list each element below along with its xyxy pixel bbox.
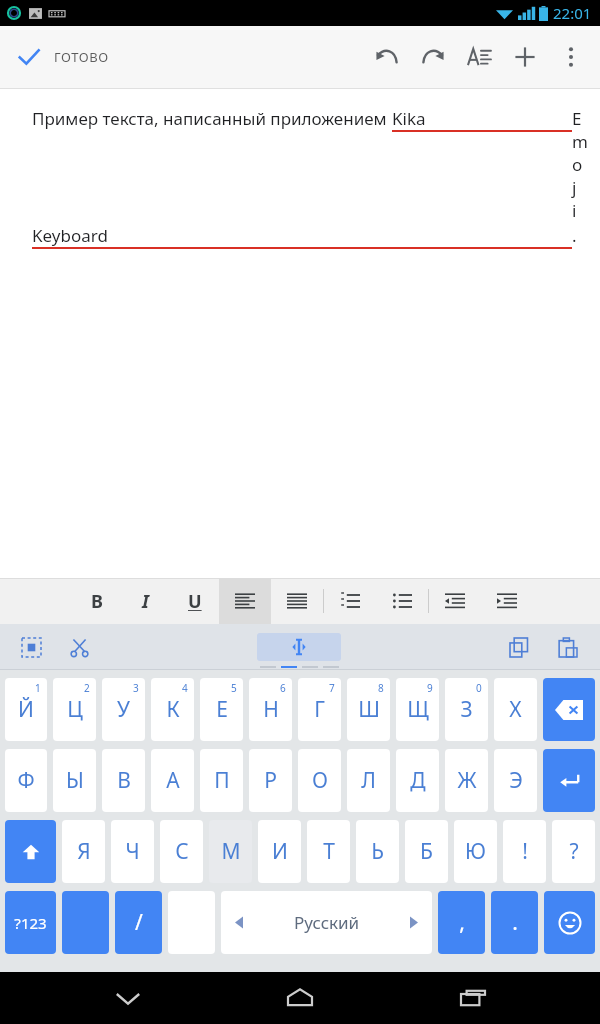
button[interactable]: Redo <box>410 34 456 80</box>
button[interactable]: З <box>445 678 488 741</box>
button[interactable]: Cut <box>62 630 96 664</box>
staticText: Ж <box>457 766 477 795</box>
staticText: Г <box>314 695 325 724</box>
staticText: Д <box>410 766 426 795</box>
button[interactable]: Bulleted list <box>376 578 428 624</box>
button[interactable]: Shift <box>5 820 56 883</box>
staticText: Русский <box>294 911 360 934</box>
button[interactable]: Undo <box>364 34 410 80</box>
staticText: Ь <box>371 837 384 866</box>
button[interactable]: Increase indent <box>481 578 533 624</box>
button[interactable]: Home <box>255 972 345 1024</box>
button[interactable]: А <box>151 749 194 812</box>
staticText: 8 <box>378 681 384 695</box>
staticText: . <box>512 908 518 937</box>
button[interactable]: Щ <box>396 678 439 741</box>
button[interactable]: Backspace <box>543 678 595 741</box>
button[interactable]: И <box>258 820 301 883</box>
button[interactable]: ! <box>503 820 546 883</box>
button[interactable]: Б <box>405 820 448 883</box>
staticText: К <box>166 695 180 724</box>
staticText: ! <box>522 837 528 866</box>
button[interactable]: Я <box>62 820 105 883</box>
button[interactable]: С <box>160 820 203 883</box>
button[interactable]: , <box>438 891 485 954</box>
button[interactable]: B <box>72 578 121 624</box>
staticText: Л <box>361 766 376 795</box>
button[interactable]: Emoji <box>544 891 595 954</box>
staticText: / <box>135 908 143 937</box>
button[interactable]: Р <box>249 749 292 812</box>
staticText: В <box>117 766 131 795</box>
button[interactable]: Х <box>494 678 537 741</box>
staticText: Э <box>509 766 523 795</box>
button[interactable]: Key <box>62 891 109 954</box>
staticText: А <box>166 766 180 795</box>
button[interactable]: . <box>491 891 538 954</box>
button[interactable]: Пример текста, написанный приложением <box>0 89 600 578</box>
button[interactable]: Н <box>249 678 292 741</box>
button[interactable]: У <box>102 678 145 741</box>
button[interactable]: Select all <box>14 630 48 664</box>
staticText: Е <box>216 695 228 724</box>
button[interactable]: Decrease indent <box>429 578 481 624</box>
staticText: ГОТОВО <box>54 48 109 66</box>
button[interactable]: В <box>102 749 145 812</box>
button[interactable]: More options <box>548 34 594 80</box>
button[interactable]: Copy <box>502 630 536 664</box>
button[interactable]: Ж <box>445 749 488 812</box>
button[interactable]: Т <box>307 820 350 883</box>
staticText: Ю <box>465 837 486 866</box>
button[interactable]: Justify <box>271 578 323 624</box>
button[interactable]: Ч <box>111 820 154 883</box>
button[interactable]: Paste <box>550 630 584 664</box>
button[interactable]: Ы <box>53 749 96 812</box>
button[interactable]: К <box>151 678 194 741</box>
button[interactable]: / <box>115 891 162 954</box>
staticText: 7 <box>329 681 335 695</box>
button[interactable]: М <box>209 820 252 883</box>
button[interactable]: Русский <box>221 891 432 954</box>
button[interactable]: П <box>200 749 243 812</box>
button[interactable]: Ф <box>5 749 47 812</box>
button[interactable]: ГОТОВО <box>0 38 121 76</box>
button[interactable]: Numbered list <box>324 578 376 624</box>
button[interactable]: Insert <box>502 34 548 80</box>
staticText: Х <box>509 695 522 724</box>
staticText: U <box>188 589 202 614</box>
button[interactable]: Ю <box>454 820 497 883</box>
staticText: ?123 <box>14 913 47 933</box>
button[interactable]: Align left <box>219 578 271 624</box>
staticText: 4 <box>182 681 188 695</box>
staticText: Ц <box>67 695 83 724</box>
button[interactable]: Text formatting <box>456 34 502 80</box>
staticText: Й <box>18 695 34 724</box>
button[interactable]: Enter <box>543 749 595 812</box>
button[interactable]: Move cursor <box>257 633 341 661</box>
staticText: 1 <box>35 681 41 695</box>
staticText: Пример текста, написанный приложением <box>32 107 392 130</box>
button[interactable]: Recent apps <box>428 972 518 1024</box>
button[interactable]: Й <box>5 678 47 741</box>
button[interactable]: I <box>121 578 170 624</box>
button[interactable]: Д <box>396 749 439 812</box>
button[interactable]: ?123 <box>5 891 56 954</box>
staticText: О <box>312 766 328 795</box>
button[interactable]: Э <box>494 749 537 812</box>
button[interactable]: Ь <box>356 820 399 883</box>
staticText: 2 <box>84 681 90 695</box>
button[interactable]: Л <box>347 749 390 812</box>
button[interactable]: Ш <box>347 678 390 741</box>
button[interactable]: Г <box>298 678 341 741</box>
button[interactable]: Ц <box>53 678 96 741</box>
staticText: Kika <box>392 107 426 130</box>
button[interactable]: О <box>298 749 341 812</box>
button[interactable]: Hide keyboard <box>83 972 173 1024</box>
staticText: Б <box>420 837 433 866</box>
button[interactable]: Е <box>200 678 243 741</box>
button[interactable]: ? <box>552 820 595 883</box>
button[interactable]: U <box>170 578 219 624</box>
staticText: Р <box>264 766 277 795</box>
staticText: Щ <box>407 695 429 724</box>
